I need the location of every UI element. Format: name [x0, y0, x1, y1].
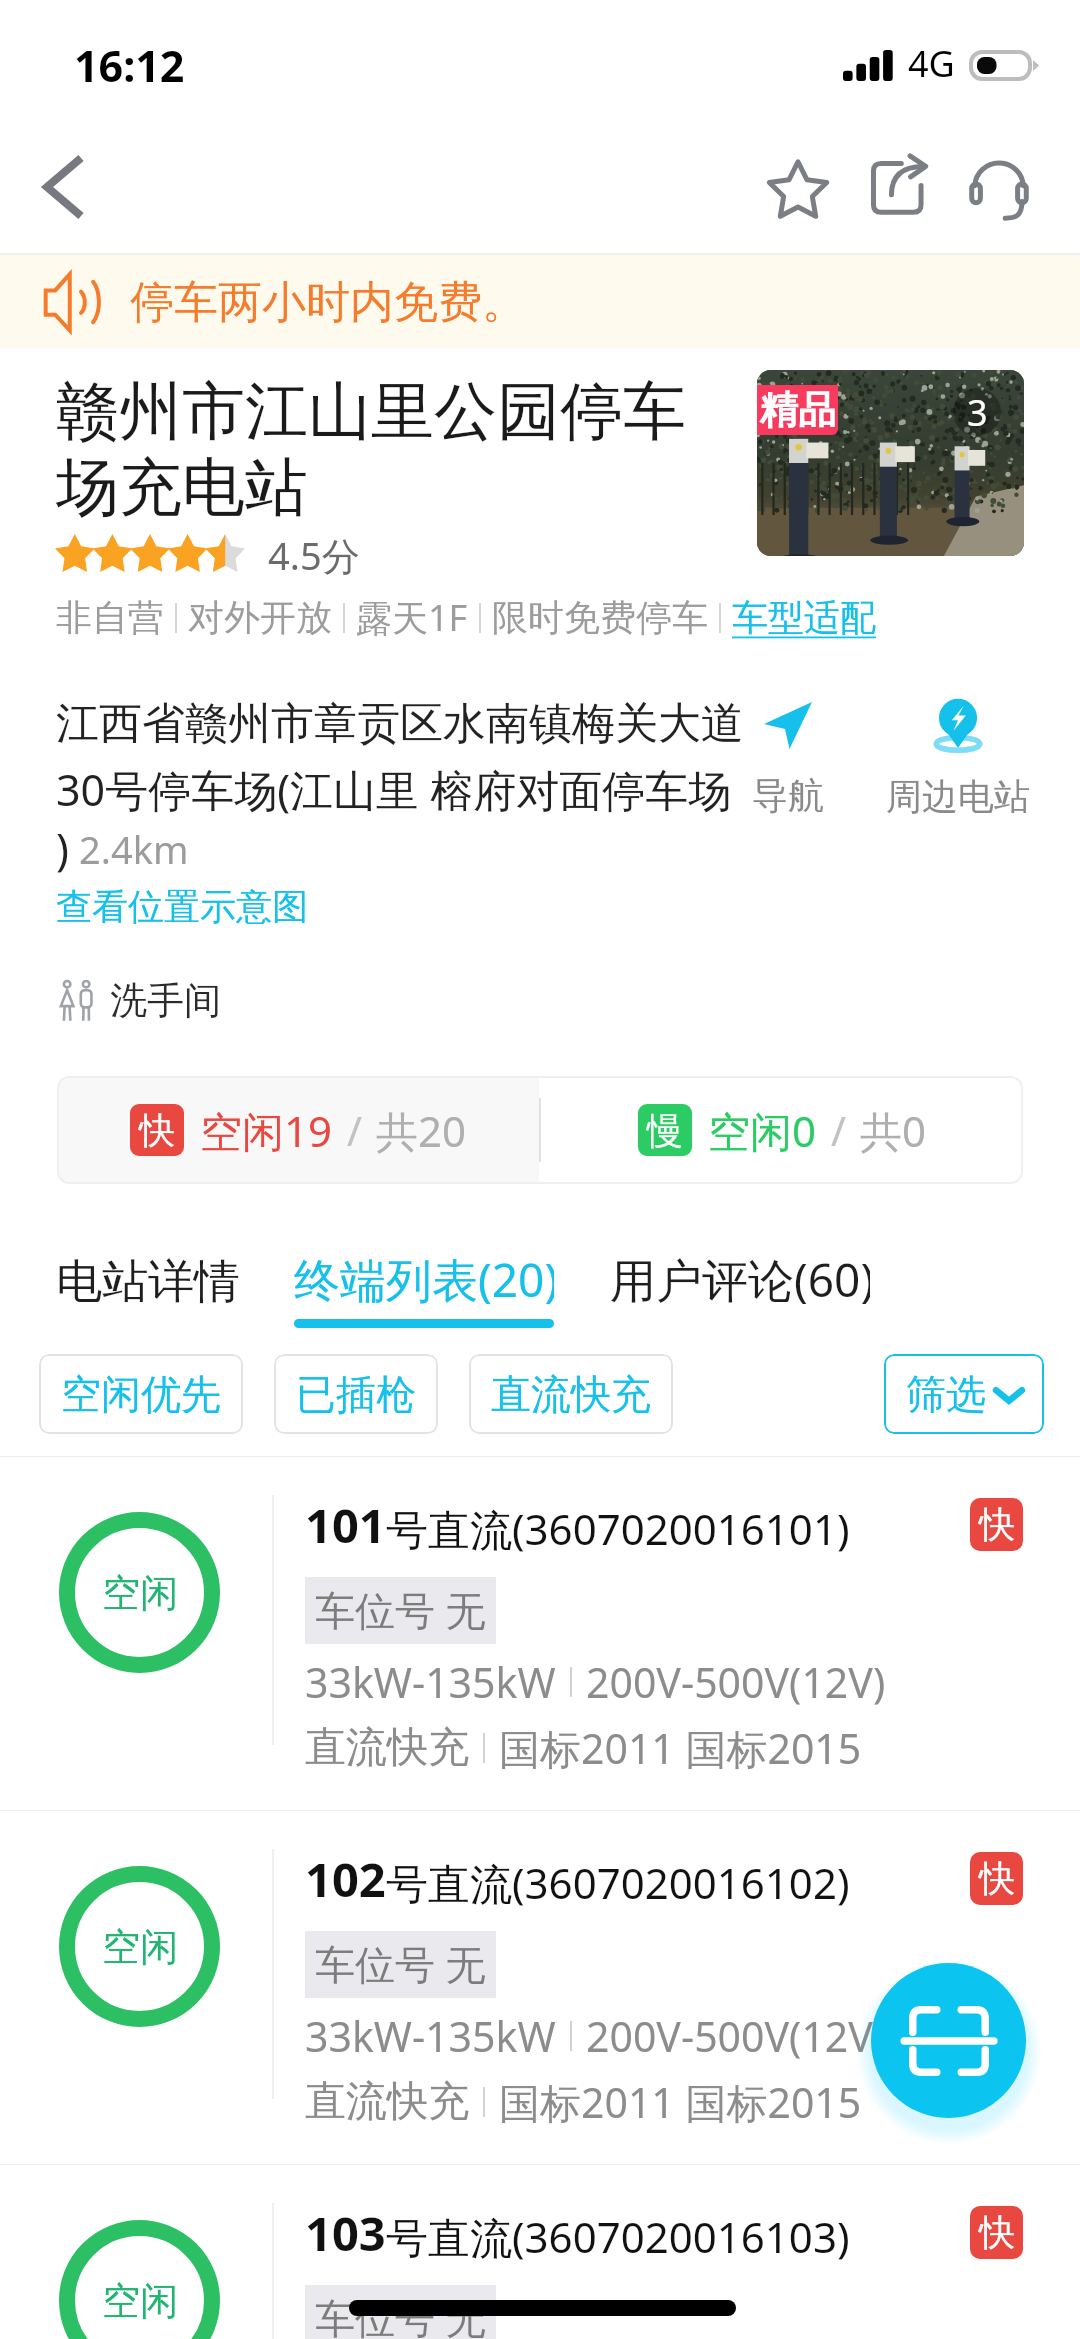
- button[interactable]: 已插枪: [274, 1354, 438, 1434]
- button[interactable]: 电站详情: [56, 1253, 240, 1328]
- staticText: 国标2011 国标2015: [499, 1720, 862, 1776]
- staticText: 限时免费停车: [492, 595, 708, 640]
- staticText: 快: [979, 1502, 1015, 1547]
- staticText: 101: [305, 1493, 386, 1557]
- staticText: 洗手间: [110, 977, 221, 1024]
- staticText: 车型适配: [732, 595, 876, 640]
- staticText: 导航: [752, 773, 824, 818]
- staticText: 空闲0: [708, 1102, 817, 1159]
- button[interactable]: 筛选: [884, 1354, 1044, 1434]
- staticText: 车位号 无: [315, 2290, 486, 2339]
- button[interactable]: 慢: [541, 1076, 1023, 1184]
- staticText: 空闲: [102, 1923, 178, 1971]
- staticText: 16:12: [74, 36, 185, 95]
- button[interactable]: 终端列表(20): [294, 1248, 554, 1328]
- button[interactable]: 车型适配: [732, 595, 876, 640]
- staticText: 2.4km: [79, 823, 189, 875]
- staticText: 号直流(3607020016101): [386, 1500, 850, 1557]
- staticText: 快: [979, 1856, 1015, 1901]
- button[interactable]: 用户评论(60): [610, 1248, 870, 1328]
- staticText: 国标2011 国标2015: [499, 2074, 862, 2130]
- staticText: 共0: [860, 1102, 927, 1159]
- staticText: 停车两小时内免费。: [130, 275, 526, 330]
- button[interactable]: Back: [8, 131, 118, 241]
- staticText: 3: [967, 388, 988, 436]
- staticText: 直流快充: [305, 1722, 469, 1774]
- staticText: 筛选: [906, 1369, 986, 1419]
- button[interactable]: Scan QR code: [871, 1963, 1026, 2118]
- staticText: 电站详情: [56, 1253, 240, 1311]
- staticText: 非自营: [56, 595, 164, 640]
- staticText: 200V-500V(12V): [586, 2008, 886, 2064]
- button[interactable]: Customer support: [949, 139, 1049, 239]
- staticText: 33kW-135kW: [305, 1654, 556, 1710]
- staticText: 江西省赣州市章贡区水南镇梅关大道30号停车场(江山里 榕府对面停车场: [56, 697, 746, 819]
- staticText: 直流快充: [491, 1369, 651, 1419]
- staticText: 直流快充: [305, 2076, 469, 2128]
- button[interactable]: 空闲: [0, 1811, 1080, 2164]
- button[interactable]: Share: [849, 139, 949, 239]
- staticText: 终端列表(20): [294, 1248, 554, 1311]
- staticText: 快: [139, 1108, 175, 1153]
- staticText: 精品: [760, 386, 836, 434]
- button[interactable]: Navigate: [720, 700, 855, 818]
- staticText: 200V-500V(12V): [586, 1654, 886, 1710]
- staticText: 车位号 无: [315, 1936, 486, 1991]
- staticText: 露天1F: [356, 593, 468, 642]
- staticText: 号直流(3607020016102): [386, 1854, 850, 1911]
- staticText: 102: [305, 1847, 386, 1911]
- staticText: 周边电站: [886, 774, 1030, 819]
- staticText: 已插枪: [296, 1369, 416, 1419]
- staticText: 对外开放: [188, 595, 332, 640]
- staticText: 用户评论(60): [610, 1248, 870, 1311]
- staticText: 查看位置示意图: [56, 884, 308, 929]
- staticText: 赣州市江山里公园停车场充电站: [56, 372, 716, 527]
- staticText: /: [347, 1103, 362, 1157]
- staticText: 快: [979, 2210, 1015, 2255]
- button[interactable]: 快: [57, 1076, 539, 1184]
- button[interactable]: 空闲: [0, 1457, 1080, 1810]
- staticText: 号直流(3607020016103): [386, 2208, 850, 2265]
- staticText: 4G: [908, 39, 955, 88]
- staticText: 空闲: [102, 1569, 178, 1617]
- button[interactable]: 直流快充: [469, 1354, 673, 1434]
- button[interactable]: 查看位置示意图: [56, 884, 308, 929]
- staticText: 103: [305, 2201, 386, 2265]
- staticText: 空闲19: [200, 1102, 333, 1159]
- staticText: 4.5分: [268, 529, 360, 581]
- staticText: 33kW-135kW: [305, 2008, 556, 2064]
- staticText: 慢: [647, 1108, 683, 1153]
- staticText: 空闲优先: [61, 1369, 221, 1419]
- button[interactable]: 空闲优先: [39, 1354, 243, 1434]
- staticText: 共20: [376, 1102, 467, 1159]
- staticText: 空闲: [102, 2277, 178, 2325]
- button[interactable]: Nearby stations: [885, 697, 1030, 819]
- staticText: ): [56, 819, 69, 878]
- staticText: /: [831, 1103, 846, 1157]
- button[interactable]: Station photos: [757, 370, 1024, 556]
- button[interactable]: Favorite: [746, 137, 849, 240]
- staticText: 车位号 无: [315, 1582, 486, 1637]
- button[interactable]: 空闲: [0, 2165, 1080, 2339]
